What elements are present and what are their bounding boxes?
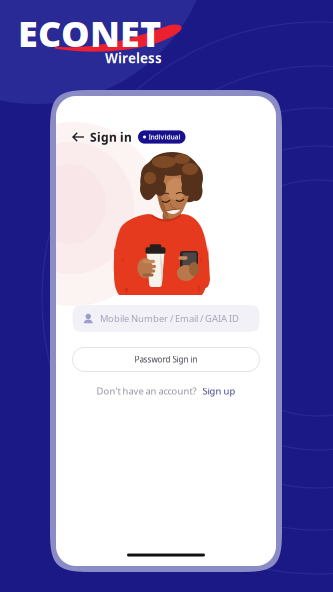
staticText: Don't have an account? bbox=[96, 385, 196, 397]
staticText: Sign up bbox=[202, 385, 235, 397]
button[interactable]: Sign up bbox=[202, 385, 235, 397]
staticText: Individual bbox=[148, 133, 180, 141]
button[interactable]: Password Sign in bbox=[72, 347, 259, 371]
button[interactable]: Individual bbox=[138, 130, 185, 144]
button[interactable]: Back bbox=[69, 127, 88, 146]
staticText: Mobile Number / Email / GAIA ID bbox=[100, 312, 239, 325]
staticText: Sign in bbox=[90, 129, 132, 145]
staticText: Wireless bbox=[105, 49, 162, 67]
staticText: ECONET bbox=[18, 9, 161, 57]
staticText: Password Sign in bbox=[134, 354, 197, 365]
